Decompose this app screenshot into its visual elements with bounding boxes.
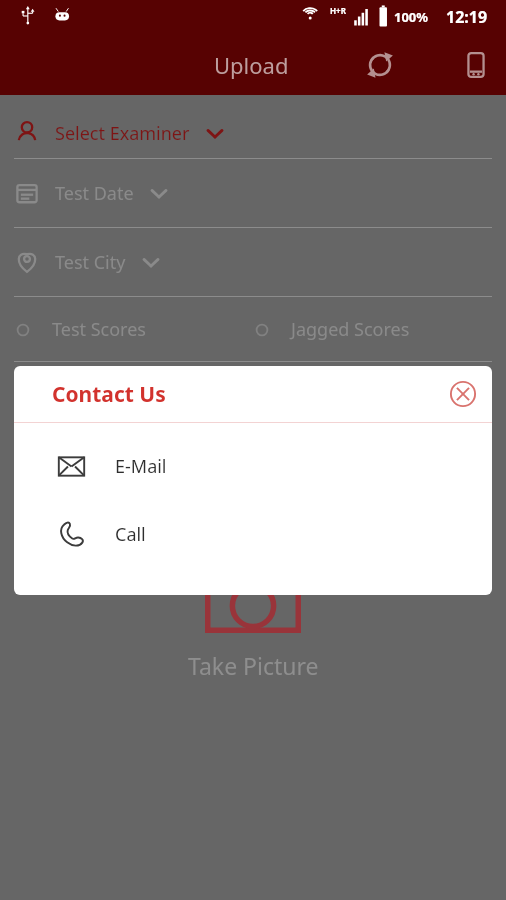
button[interactable]: Test Scores	[14, 317, 253, 342]
button[interactable]: Call	[14, 500, 492, 568]
staticText: Contact Us	[52, 380, 166, 409]
other: Call	[58, 521, 85, 548]
button[interactable]: Jagged Scores	[253, 317, 492, 342]
button[interactable]: Take Picture	[0, 565, 506, 681]
staticText: Take Picture	[188, 650, 319, 681]
button[interactable]: Close	[440, 371, 486, 417]
other: E-Mail	[58, 453, 85, 480]
staticText: Test City	[55, 250, 126, 275]
staticText: Select Examiner	[55, 121, 190, 146]
button[interactable]: E-Mail	[14, 432, 492, 500]
staticText: Test Scores	[52, 317, 146, 342]
staticText: E-Mail	[115, 454, 167, 479]
staticText: Jagged Scores	[291, 317, 410, 342]
staticText: 100%	[394, 8, 429, 26]
button[interactable]: Test Date	[0, 159, 506, 228]
staticText: Call	[115, 522, 146, 547]
staticText: Test Date	[55, 181, 134, 206]
button[interactable]: Refresh	[356, 41, 404, 89]
button[interactable]: Select Examiner	[0, 108, 506, 159]
button[interactable]: Device	[452, 41, 500, 89]
staticText: 12:19	[446, 6, 488, 28]
button[interactable]: Test City	[0, 228, 506, 297]
staticText: Upload	[214, 50, 289, 80]
staticText: H+R	[330, 5, 346, 16]
